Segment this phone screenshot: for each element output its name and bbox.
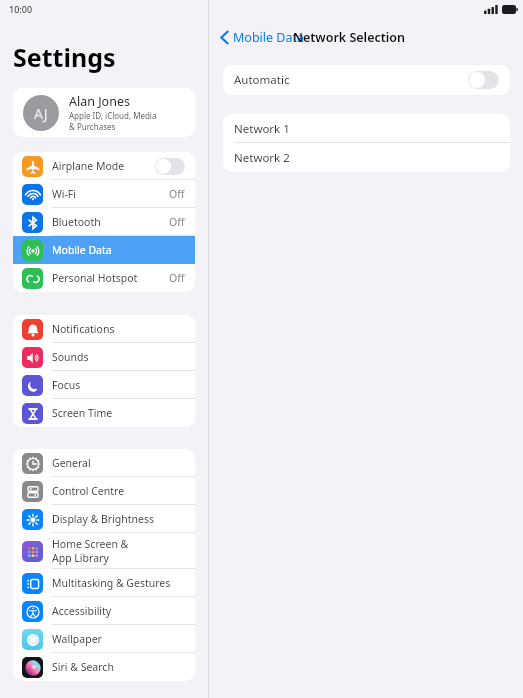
staticText: Airplane Mode — [52, 159, 125, 173]
button[interactable]: AJ — [23, 88, 185, 137]
button[interactable]: Automatic — [234, 65, 499, 95]
button[interactable]: Mobile Data — [13, 236, 195, 264]
button[interactable]: Home Screen & — [13, 533, 195, 569]
staticText: Screen Time — [52, 406, 113, 420]
staticText: Mobile Data — [52, 243, 112, 257]
staticText: Siri & Search — [52, 660, 114, 674]
button[interactable]: Personal Hotspot — [13, 264, 195, 292]
button[interactable]: Airplane Mode — [13, 152, 195, 180]
staticText: AJ — [34, 104, 48, 123]
button[interactable]: Mobile Data — [220, 29, 305, 46]
button[interactable]: Sounds — [13, 343, 195, 371]
staticText: Wi-Fi — [52, 187, 77, 201]
button[interactable]: Multitasking & Gestures — [13, 569, 195, 597]
button[interactable]: Wallpaper — [13, 625, 195, 653]
staticText: Multitasking & Gestures — [52, 576, 171, 590]
button[interactable]: Control Centre — [13, 477, 195, 505]
staticText: Network 1 — [234, 121, 290, 137]
button[interactable]: Toggle off — [468, 71, 499, 89]
button[interactable]: Network 1 — [234, 114, 499, 143]
staticText: Network Selection — [293, 29, 406, 46]
button[interactable]: Siri & Search — [13, 653, 195, 681]
staticText: Control Centre — [52, 484, 125, 498]
staticText: Home Screen & — [52, 537, 129, 551]
staticText: Alan Jones — [69, 93, 130, 110]
staticText: Sounds — [52, 350, 89, 364]
button[interactable]: Wi-Fi — [13, 180, 195, 208]
button[interactable]: Network 2 — [234, 143, 499, 172]
staticText: Focus — [52, 378, 81, 392]
button[interactable]: Notifications — [13, 315, 195, 343]
staticText: Apple ID, iCloud, Media — [69, 110, 157, 121]
staticText: Accessibility — [52, 604, 112, 618]
button[interactable]: Accessibility — [13, 597, 195, 625]
button[interactable]: Bluetooth — [13, 208, 195, 236]
staticText: Display & Brightness — [52, 512, 155, 526]
staticText: Settings — [13, 40, 116, 74]
staticText: Notifications — [52, 322, 115, 336]
button[interactable]: Focus — [13, 371, 195, 399]
staticText: Off — [169, 215, 185, 229]
button[interactable]: Screen Time — [13, 399, 195, 427]
staticText: Mobile Data — [233, 29, 305, 46]
button[interactable]: General — [13, 449, 195, 477]
staticText: Wallpaper — [52, 632, 102, 646]
staticText: Automatic — [234, 72, 468, 88]
staticText: App Library — [52, 551, 109, 565]
staticText: 10:00 — [9, 3, 33, 15]
button[interactable]: Toggle off — [155, 158, 185, 175]
staticText: Bluetooth — [52, 215, 101, 229]
staticText: Off — [169, 187, 185, 201]
staticText: & Purchases — [69, 121, 116, 132]
staticText: Off — [169, 271, 185, 285]
button[interactable]: Display & Brightness — [13, 505, 195, 533]
staticText: Personal Hotspot — [52, 271, 138, 285]
staticText: Network 2 — [234, 150, 290, 166]
staticText: General — [52, 456, 91, 470]
